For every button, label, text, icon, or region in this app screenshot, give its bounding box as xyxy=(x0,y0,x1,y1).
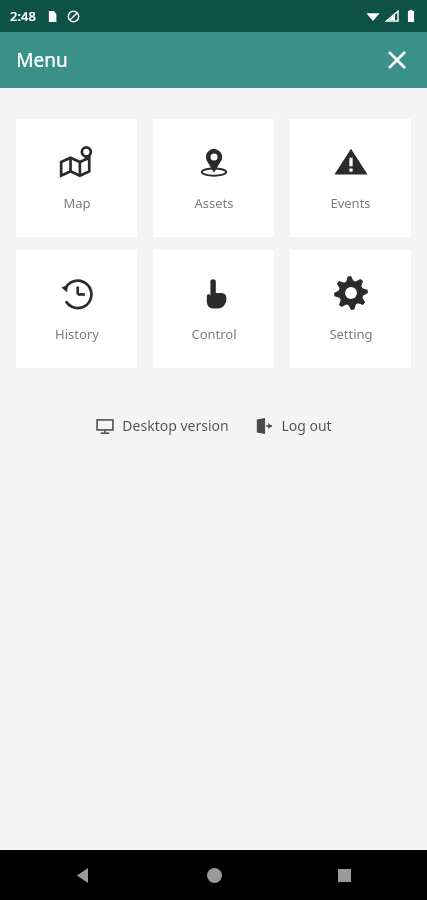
button[interactable]: Control xyxy=(153,250,274,368)
staticText: Log out xyxy=(281,416,332,435)
button[interactable]: Log out xyxy=(251,412,336,439)
button[interactable]: History xyxy=(16,250,137,368)
staticText: 2:48 xyxy=(10,7,36,25)
button[interactable]: Close xyxy=(375,38,419,82)
staticText: Setting xyxy=(329,325,373,343)
button[interactable]: Setting xyxy=(290,250,411,368)
button[interactable]: Home xyxy=(191,852,237,898)
button[interactable]: Recent apps xyxy=(321,852,367,898)
button[interactable]: Back xyxy=(60,852,106,898)
staticText: Assets xyxy=(194,194,234,212)
staticText: Control xyxy=(191,325,237,343)
staticText: Desktop version xyxy=(122,416,229,435)
staticText: History xyxy=(55,325,99,343)
staticText: Menu xyxy=(16,47,68,73)
button[interactable]: Desktop version xyxy=(92,412,233,439)
staticText: Events xyxy=(330,194,371,212)
button[interactable]: Assets xyxy=(153,119,274,237)
staticText: Map xyxy=(63,194,91,212)
button[interactable]: Map xyxy=(16,119,137,237)
button[interactable]: Events xyxy=(290,119,411,237)
